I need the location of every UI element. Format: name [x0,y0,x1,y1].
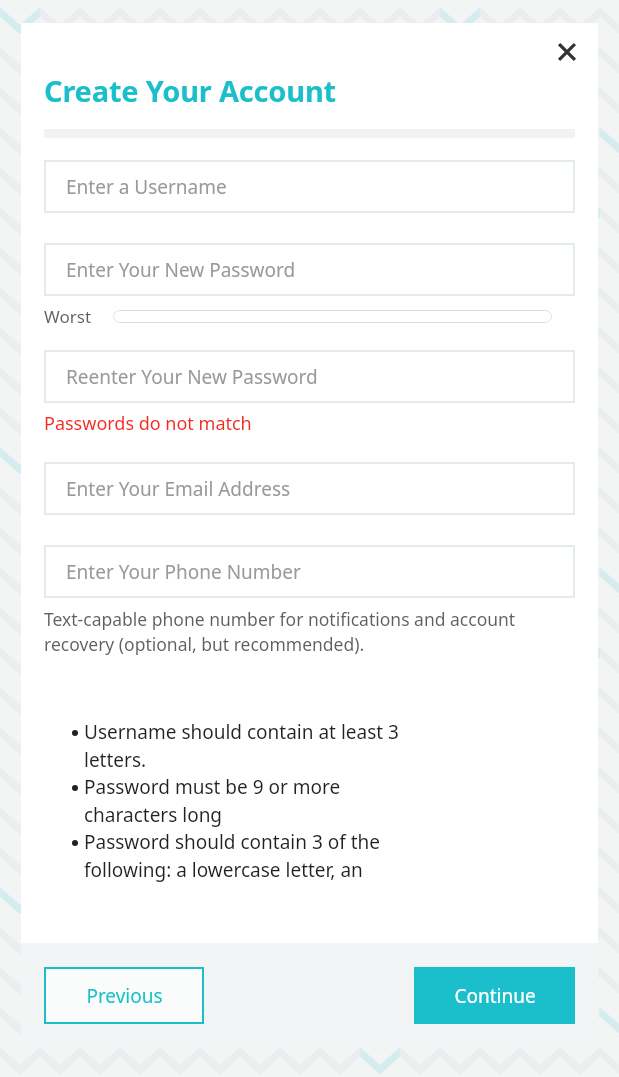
staticText: Passwords do not match [44,411,252,436]
staticText: Enter Your New Password [66,257,296,283]
staticText: Password must be 9 or more characters lo… [84,774,430,828]
button[interactable]: Enter Your Email Address [44,462,575,515]
staticText: Text-capable phone number for notificati… [44,607,556,657]
staticText: Worst [44,305,92,328]
staticText: Username should contain at least 3 lette… [84,719,430,773]
button[interactable]: Continue [414,967,575,1024]
staticText: Enter Your Phone Number [66,559,301,585]
staticText: Previous [86,983,163,1009]
staticText: Password should contain 3 of the followi… [84,829,430,883]
staticText: Reenter Your New Password [66,364,318,390]
button[interactable]: Previous [44,967,204,1024]
button[interactable]: Enter Your Phone Number [44,545,575,598]
staticText: Enter Your Email Address [66,476,291,502]
button[interactable]: Reenter Your New Password [44,350,575,403]
button[interactable]: Enter a Username [44,160,575,213]
staticText: Enter a Username [66,174,227,200]
button[interactable]: Enter Your New Password [44,243,575,296]
button[interactable]: Close [550,35,584,69]
staticText: Create Your Account [44,71,336,110]
staticText: Continue [454,983,536,1009]
